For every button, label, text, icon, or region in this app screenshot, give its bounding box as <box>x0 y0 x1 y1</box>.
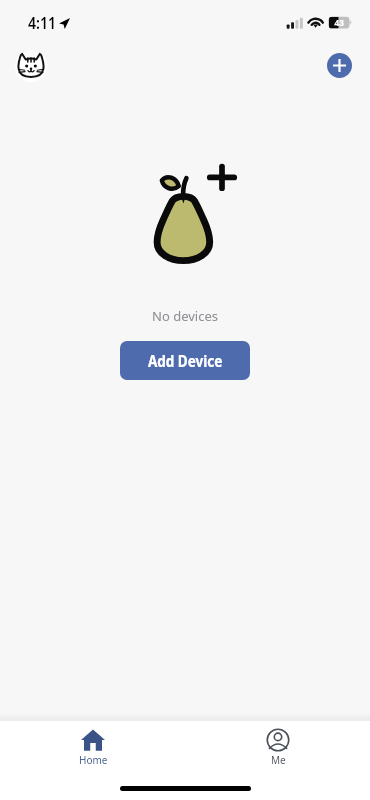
button[interactable]: Profile <box>15 50 47 82</box>
staticText: 4:11 <box>28 12 56 34</box>
staticText: 43 <box>334 16 344 28</box>
staticText: Me <box>271 753 286 767</box>
button[interactable]: Add device <box>327 53 352 78</box>
button[interactable]: Home <box>38 721 148 767</box>
button[interactable]: Me <box>223 721 333 767</box>
button[interactable]: Add Device <box>120 341 250 380</box>
staticText: Add Device <box>148 350 223 372</box>
staticText: No devices <box>0 307 370 325</box>
staticText: Home <box>79 753 108 767</box>
